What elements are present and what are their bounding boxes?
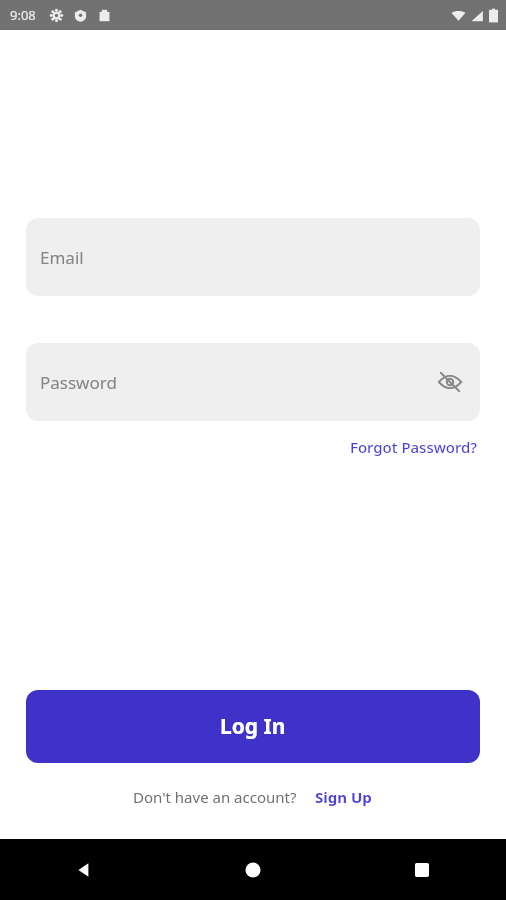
button[interactable]: Email [26, 218, 480, 296]
staticText: Don't have an account? [133, 787, 297, 807]
button[interactable]: Sign Up [313, 785, 374, 809]
button[interactable]: Forgot Password? [348, 435, 480, 459]
staticText: Sign Up [315, 787, 372, 807]
staticText: Email [40, 246, 84, 269]
staticText: Password [40, 371, 117, 394]
button[interactable]: Recent apps [337, 839, 506, 900]
button[interactable]: Home [168, 839, 337, 900]
button[interactable]: Password [26, 343, 480, 421]
staticText: Log In [220, 712, 286, 741]
staticText: 9:08 [10, 6, 36, 24]
button[interactable]: Log In [26, 690, 480, 763]
button[interactable]: Toggle password visibility [430, 362, 470, 402]
staticText: Forgot Password? [350, 437, 478, 457]
button[interactable]: Back [0, 839, 168, 900]
